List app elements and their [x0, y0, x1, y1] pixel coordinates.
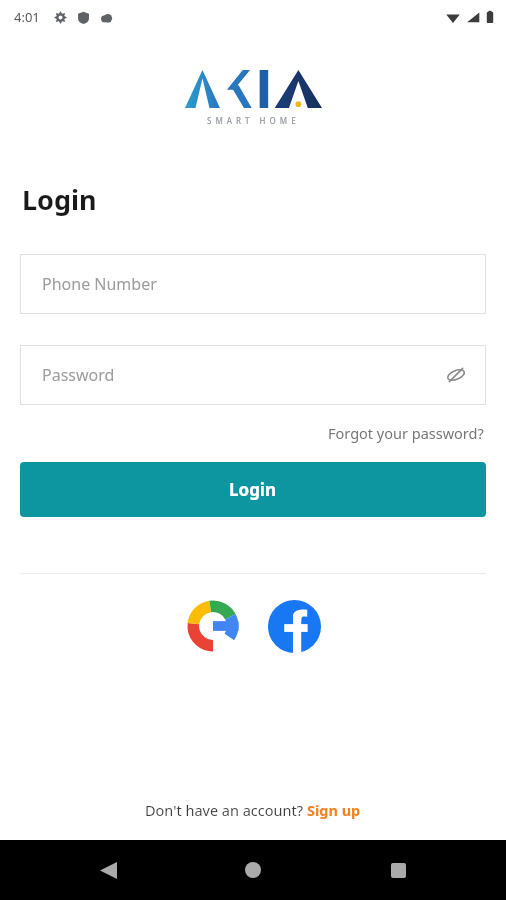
staticText: Forgot your password? — [328, 423, 484, 443]
button[interactable]: Don't have an account? — [141, 796, 365, 824]
button[interactable]: Recent apps — [378, 850, 418, 890]
staticText: Password — [42, 364, 115, 386]
staticText: Phone Number — [42, 273, 157, 295]
button[interactable]: Forgot your password? — [326, 421, 486, 445]
staticText: Don't have an account? — [145, 800, 307, 820]
staticText: SMART HOME — [207, 115, 300, 126]
button[interactable]: Back — [88, 850, 128, 890]
staticText: Login — [229, 478, 277, 501]
button[interactable]: Phone Number — [20, 254, 486, 314]
staticText: Sign up — [307, 800, 361, 820]
button[interactable]: Home — [233, 850, 273, 890]
button[interactable]: Password — [20, 345, 486, 405]
button[interactable]: Sign in with Google — [185, 598, 241, 654]
button[interactable]: Login — [20, 462, 486, 517]
staticText: Login — [22, 181, 97, 218]
button[interactable]: Sign in with Facebook — [266, 598, 322, 654]
button[interactable]: Show password — [440, 359, 472, 391]
staticText: 4:01 — [14, 8, 40, 26]
